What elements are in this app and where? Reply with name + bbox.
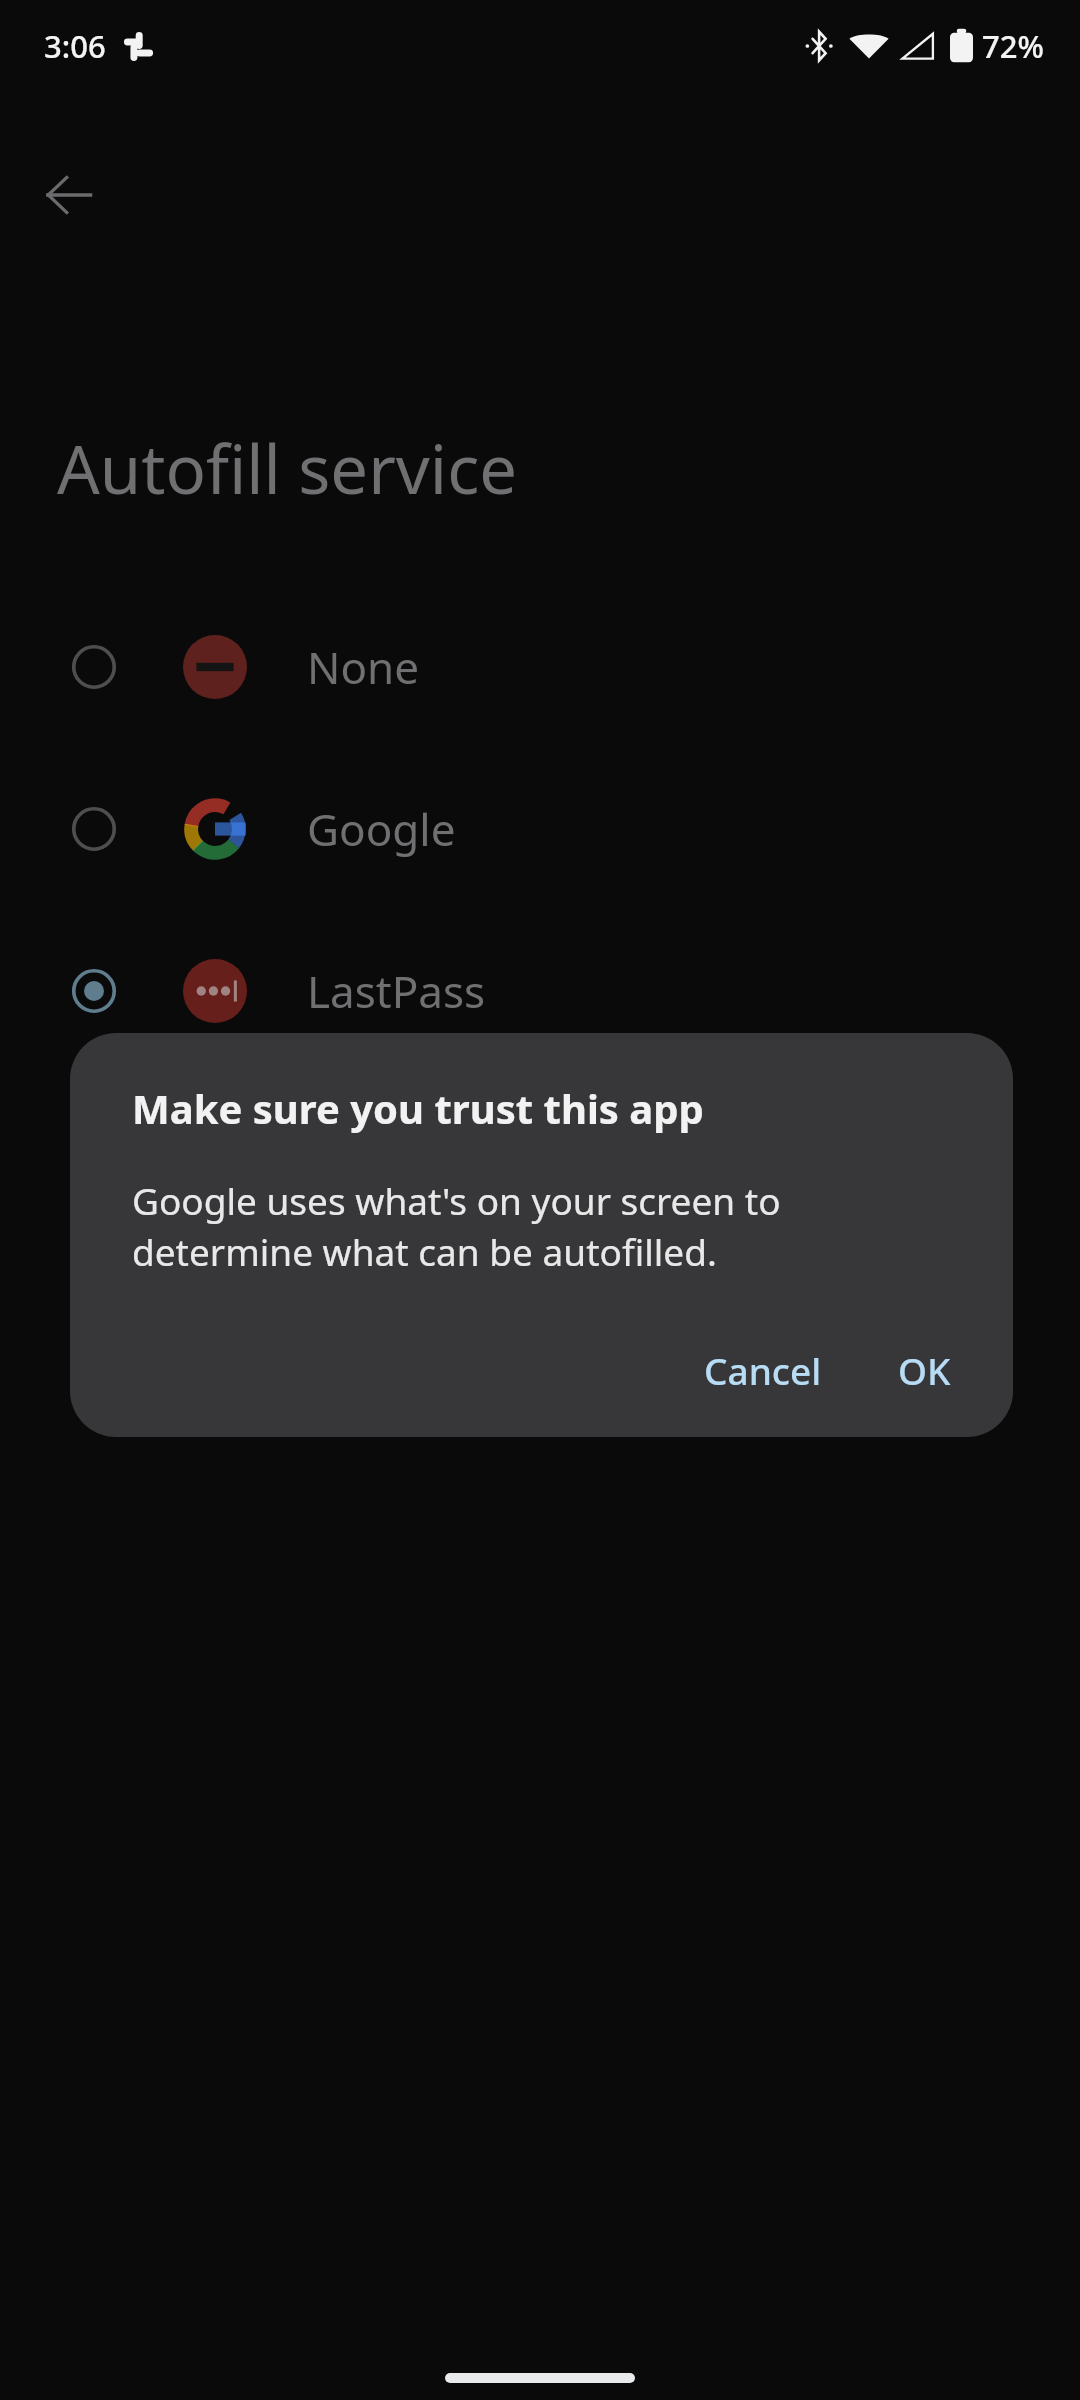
staticText: 3:06 bbox=[44, 25, 106, 67]
staticText: None bbox=[307, 637, 420, 697]
staticText: OK bbox=[898, 1345, 951, 1395]
staticText: Google bbox=[307, 799, 456, 859]
button[interactable]: Back bbox=[22, 148, 116, 242]
staticText: Google uses what's on your screen to det… bbox=[132, 1175, 781, 1277]
button[interactable]: None bbox=[0, 586, 1080, 748]
staticText: Make sure you trust this app bbox=[132, 1081, 704, 1135]
button[interactable]: Google bbox=[0, 748, 1080, 910]
button[interactable]: LastPass bbox=[0, 910, 1080, 1072]
button[interactable]: OK bbox=[870, 1325, 979, 1415]
staticText: LastPass bbox=[307, 961, 486, 1021]
staticText: 72% bbox=[982, 25, 1044, 67]
staticText: Autofill service bbox=[57, 422, 518, 513]
button[interactable]: Cancel bbox=[676, 1325, 850, 1415]
staticText: Cancel bbox=[704, 1345, 822, 1395]
